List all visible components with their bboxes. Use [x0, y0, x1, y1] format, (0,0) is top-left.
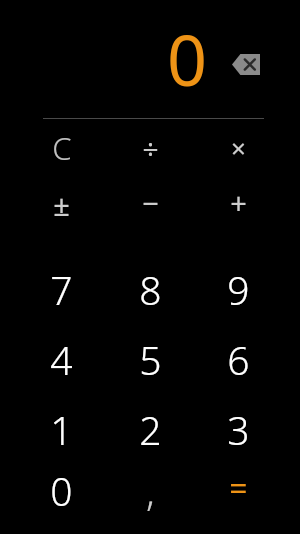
staticText: ×	[231, 130, 246, 165]
button[interactable]: 5	[106, 324, 194, 394]
button[interactable]: ×	[194, 119, 282, 176]
staticText: 7	[50, 263, 73, 316]
staticText: ,	[146, 464, 155, 517]
staticText: 2	[139, 403, 162, 456]
button[interactable]: =	[194, 464, 282, 534]
staticText: 0	[167, 11, 208, 106]
button[interactable]: ÷	[106, 119, 194, 176]
button[interactable]: 2	[106, 394, 194, 464]
staticText: 5	[139, 333, 162, 386]
staticText: 1	[50, 403, 73, 456]
button[interactable]: +	[194, 176, 282, 232]
staticText: 8	[139, 263, 162, 316]
button[interactable]: 9	[194, 254, 282, 324]
button[interactable]: 0	[17, 464, 106, 534]
button[interactable]: 7	[17, 254, 106, 324]
staticText: =	[229, 466, 248, 510]
staticText: +	[230, 183, 247, 222]
button[interactable]: 0	[167, 12, 208, 107]
staticText: 0	[50, 464, 73, 517]
button[interactable]: 1	[17, 394, 106, 464]
button[interactable]: ,	[106, 464, 194, 534]
staticText: 6	[227, 333, 250, 386]
button[interactable]: C	[17, 119, 106, 176]
button[interactable]: 3	[194, 394, 282, 464]
staticText: −	[142, 183, 159, 222]
staticText: ±	[53, 185, 70, 224]
staticText: ÷	[142, 129, 159, 167]
button[interactable]: 4	[17, 324, 106, 394]
button[interactable]: −	[106, 176, 194, 232]
button[interactable]: 6	[194, 324, 282, 394]
staticText: 9	[227, 263, 250, 316]
button[interactable]: 8	[106, 254, 194, 324]
button[interactable]: ±	[17, 176, 106, 232]
staticText: 4	[50, 333, 73, 386]
button[interactable]: Backspace	[228, 49, 264, 79]
staticText: C	[52, 127, 72, 169]
staticText: 3	[227, 403, 250, 456]
